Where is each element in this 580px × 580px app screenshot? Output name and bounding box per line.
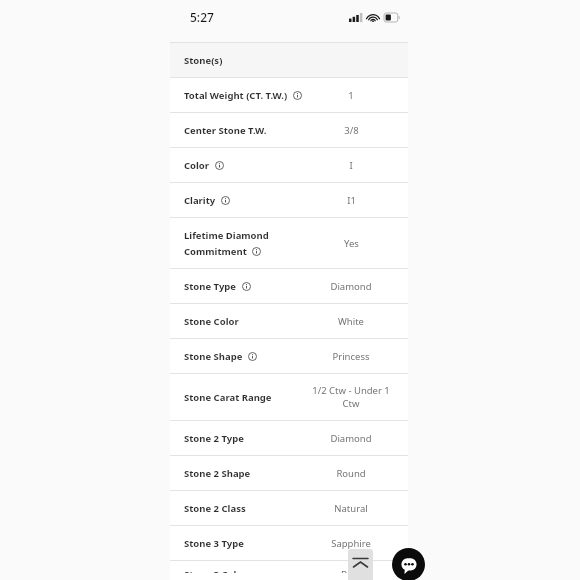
button[interactable]: Stone Type	[170, 269, 408, 303]
button[interactable]: Chat	[392, 548, 425, 580]
staticText: Stone Color	[184, 315, 239, 328]
staticText: Sapphire	[331, 537, 371, 550]
button[interactable]: Stone 2 Class	[170, 491, 408, 525]
staticText: Stone 2 Shape	[184, 467, 251, 480]
button[interactable]: Color	[170, 148, 408, 182]
button[interactable]: Stone 2 Shape	[170, 456, 408, 490]
staticText: Stone 2 Type	[184, 432, 244, 445]
staticText: Color	[184, 159, 210, 172]
staticText: Stone 3 Color	[184, 568, 247, 573]
button[interactable]: Total Weight (CT. T.W.)	[170, 78, 408, 112]
staticText: Round	[336, 467, 366, 480]
staticText: Yes	[344, 237, 359, 250]
button[interactable]: Stone 3 Type	[170, 526, 408, 560]
staticText: Diamond	[330, 432, 372, 445]
staticText: Commitment	[184, 245, 247, 258]
staticText: Stone 3 Type	[184, 537, 244, 550]
staticText: Stone 2 Class	[184, 502, 246, 515]
button[interactable]: Stone Color	[170, 304, 408, 338]
staticText: Princess	[332, 350, 370, 363]
staticText: Diamond	[330, 280, 372, 293]
staticText: Center Stone T.W.	[184, 124, 267, 137]
staticText: Blue	[341, 568, 361, 573]
button[interactable]: Stone 2 Type	[170, 421, 408, 455]
staticText: Lifetime Diamond	[184, 229, 269, 242]
staticText: I	[349, 159, 353, 172]
staticText: 1/2 Ctw - Under 1 Ctw	[308, 384, 394, 410]
staticText: 3/8	[344, 124, 359, 137]
staticText: I1	[347, 194, 356, 207]
button[interactable]: Lifetime Diamond	[170, 218, 408, 268]
button[interactable]: Scroll to top	[348, 549, 373, 580]
button[interactable]: Clarity	[170, 183, 408, 217]
staticText: 5:27	[190, 9, 214, 25]
staticText: Stone Type	[184, 280, 237, 293]
button[interactable]: Stone Carat Range	[170, 374, 408, 420]
staticText: Natural	[334, 502, 368, 515]
staticText: Stone Carat Range	[184, 391, 272, 404]
button[interactable]: Stone 3 Color	[170, 561, 408, 580]
staticText: Stone Shape	[184, 350, 243, 363]
staticText: 1	[348, 89, 354, 102]
staticText: Clarity	[184, 194, 216, 207]
staticText: Total Weight (CT. T.W.)	[184, 89, 288, 102]
staticText: Stone(s)	[184, 54, 223, 67]
button[interactable]: Center Stone T.W.	[170, 113, 408, 147]
staticText: White	[338, 315, 364, 328]
button[interactable]: Stone Shape	[170, 339, 408, 373]
